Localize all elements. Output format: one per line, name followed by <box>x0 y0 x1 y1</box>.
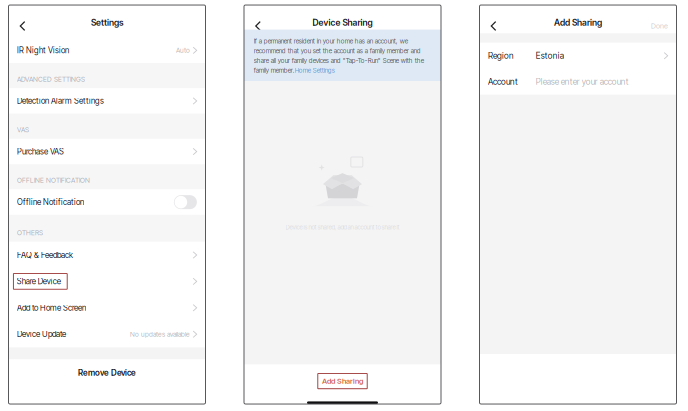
button[interactable]: Share Device <box>8 268 205 295</box>
staticText: If a permanent resident in your home has… <box>254 37 408 45</box>
staticText: Please enter your account <box>536 77 629 87</box>
button[interactable]: Add Sharing <box>318 373 367 389</box>
staticText: OTHERS <box>17 229 43 237</box>
staticText: Purchase VAS <box>17 147 64 156</box>
button[interactable]: IR Night Vision <box>8 38 205 63</box>
staticText: No updates available <box>130 330 190 338</box>
staticText: Add to Home Screen <box>17 303 86 313</box>
button[interactable]: Done <box>651 15 668 36</box>
staticText: Region <box>488 51 514 61</box>
staticText: Settings <box>91 17 123 28</box>
staticText: Share Device <box>17 277 61 286</box>
staticText: Add Sharing <box>554 17 602 28</box>
staticText: Add Sharing <box>322 377 363 386</box>
staticText: Home Settings <box>295 66 335 74</box>
button[interactable]: FAQ & Feedback <box>8 242 205 268</box>
button[interactable]: Detection Alarm Settings <box>8 88 205 114</box>
button[interactable]: Home Settings <box>295 66 335 74</box>
button[interactable]: Back <box>14 15 31 36</box>
staticText: Offline Notification <box>17 197 84 207</box>
button[interactable]: Back <box>485 15 502 36</box>
staticText: Detection Alarm Settings <box>17 96 104 106</box>
staticText: OFFLINE NOTIFICATION <box>17 176 90 184</box>
staticText: FAQ & Feedback <box>17 250 73 260</box>
staticText: Done <box>651 22 668 30</box>
staticText: Device Sharing <box>312 17 372 28</box>
staticText: IR Night Vision <box>17 45 69 55</box>
staticText: Device Update <box>17 329 66 339</box>
button[interactable]: Purchase VAS <box>8 139 205 164</box>
staticText: recommend that you set the account as a … <box>254 47 421 55</box>
staticText: VAS <box>17 126 29 134</box>
staticText: Remove Device <box>78 368 136 378</box>
staticText: Account <box>488 77 518 87</box>
staticText: Estonia <box>536 51 564 61</box>
button[interactable]: Remove Device <box>8 359 205 386</box>
staticText: family member. <box>254 66 295 74</box>
staticText: share all your family devices and "Tap-T… <box>254 57 424 64</box>
staticText: Device is not shared, add an account to … <box>285 224 399 231</box>
button[interactable]: Add to Home Screen <box>8 295 205 321</box>
button[interactable]: Back <box>249 15 266 36</box>
button[interactable]: Region <box>479 43 676 69</box>
staticText: Auto <box>176 46 190 54</box>
button[interactable]: Device Update <box>8 321 205 347</box>
staticText: ADVANCED SETTINGS <box>17 75 85 83</box>
button[interactable]: Offline Notification <box>174 195 197 209</box>
